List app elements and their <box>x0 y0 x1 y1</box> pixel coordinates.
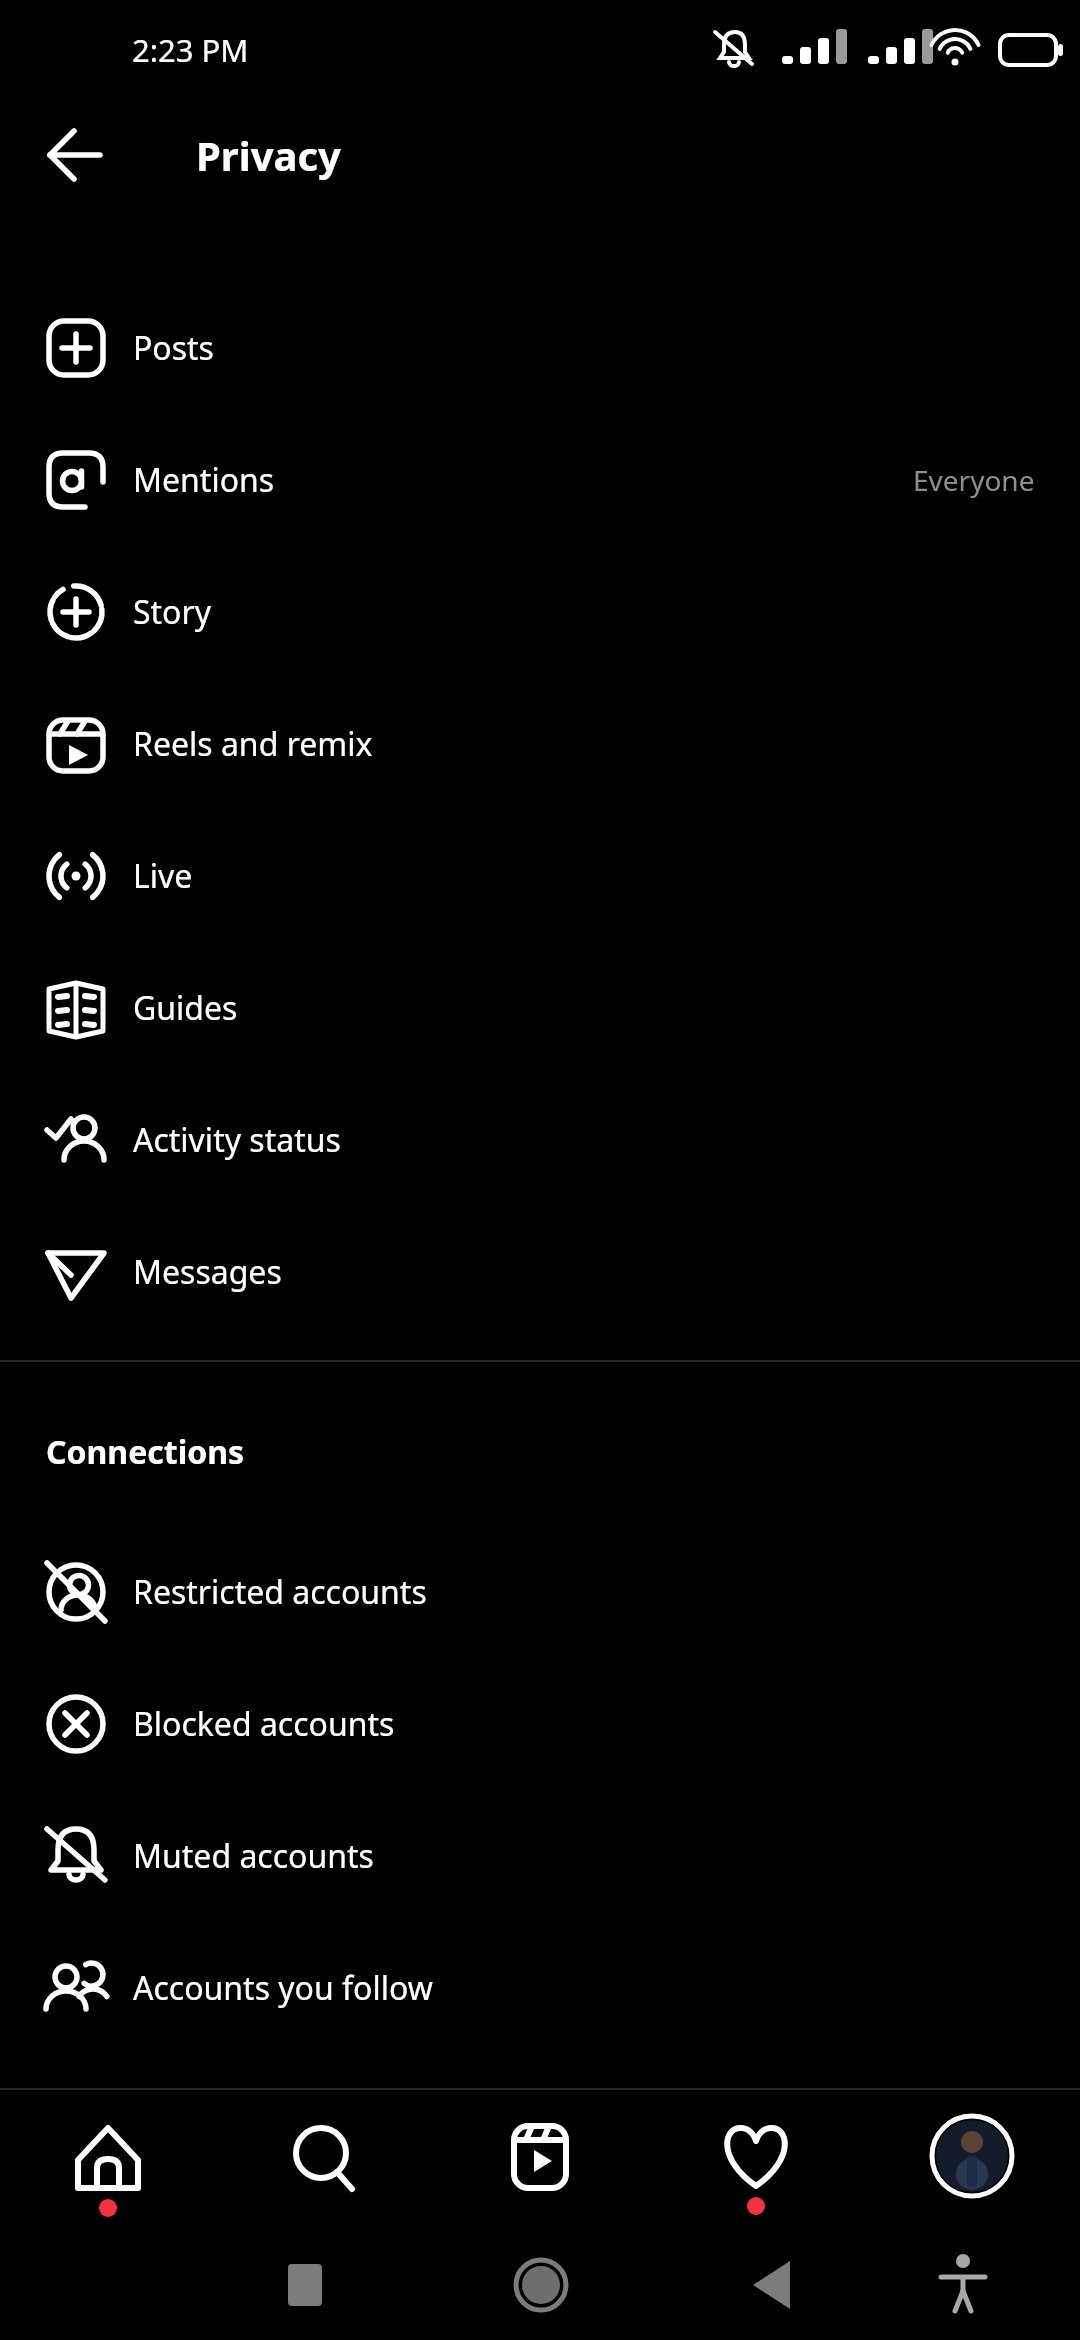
button[interactable]: Live <box>0 810 1080 942</box>
button[interactable]: Home <box>0 2090 216 2238</box>
button[interactable]: Messages <box>0 1206 1080 1338</box>
staticText: Live <box>133 854 193 898</box>
staticText: Activity status <box>133 1118 341 1162</box>
button[interactable]: Notifications <box>648 2090 864 2238</box>
staticText: Muted accounts <box>133 1834 374 1878</box>
button[interactable]: Back <box>34 115 114 195</box>
button[interactable]: Muted accounts <box>0 1790 1080 1922</box>
button[interactable]: Mentions <box>0 414 1080 546</box>
button[interactable]: Profile <box>864 2090 1080 2238</box>
button[interactable]: Guides <box>0 942 1080 1074</box>
staticText: Everyone <box>913 461 1035 499</box>
staticText: Restricted accounts <box>133 1570 427 1614</box>
button[interactable]: Blocked accounts <box>0 1658 1080 1790</box>
staticText: Story <box>133 590 212 634</box>
button[interactable]: Activity status <box>0 1074 1080 1206</box>
button[interactable]: Search <box>216 2090 432 2238</box>
button[interactable]: Reels and remix <box>0 678 1080 810</box>
staticText: Mentions <box>133 458 275 502</box>
staticText: Connections <box>46 1430 245 1474</box>
button[interactable]: Story <box>0 546 1080 678</box>
button[interactable]: Restricted accounts <box>0 1526 1080 1658</box>
staticText: Blocked accounts <box>133 1702 395 1746</box>
button[interactable]: Reels <box>432 2090 648 2238</box>
staticText: Privacy <box>196 128 341 182</box>
staticText: Guides <box>133 986 238 1030</box>
button[interactable]: Accounts you follow <box>0 1922 1080 2054</box>
staticText: Accounts you follow <box>133 1966 433 2010</box>
staticText: 2:23 PM <box>132 29 249 71</box>
staticText: Posts <box>133 326 214 370</box>
staticText: Reels and remix <box>133 722 373 766</box>
staticText: Messages <box>133 1250 282 1294</box>
button[interactable]: Posts <box>0 282 1080 414</box>
